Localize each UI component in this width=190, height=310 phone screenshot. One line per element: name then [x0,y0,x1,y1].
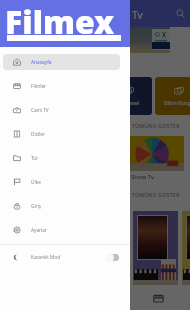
button[interactable]: Karanlık Mod [0,245,130,269]
button[interactable]: Anasayfa [3,54,120,70]
staticText: TÜMÜNÜ GÖSTER [132,191,180,198]
staticText: Belgesel [118,99,140,106]
button[interactable]: Filmler [3,78,120,94]
staticText: Ayarlar [31,227,47,233]
button[interactable]: Tür [3,150,120,166]
staticText: Bilim Kurgu [164,99,190,106]
button[interactable]: Belgesel [105,77,152,115]
button[interactable]: Aksiyon [5,77,52,115]
staticText: Anasayfa [31,59,52,65]
button[interactable]: Canlı TV [3,102,120,118]
staticText: Giriş [31,203,42,209]
staticText: Tv [132,8,143,22]
staticText: Filmex [5,0,115,44]
button[interactable]: Ülke [3,174,120,190]
staticText: Ülke [31,179,41,185]
staticText: Canlı TV [31,107,49,113]
button[interactable]: Diziler [3,126,120,142]
staticText: Filmler [31,83,47,89]
button[interactable]: Bilim Kurgu [155,77,190,115]
button[interactable]: Ayarlar [3,222,120,238]
button[interactable] [182,211,190,285]
staticText: Diziler [31,131,45,137]
button[interactable]: Giriş [3,198,120,214]
button[interactable]: Search [172,5,188,21]
button[interactable] [133,211,178,285]
staticText: TÜMÜNÜ GÖSTER [132,122,180,129]
button[interactable] [100,136,184,171]
button[interactable]: Tab 3 [148,288,168,308]
button[interactable] [84,211,129,285]
staticText: Show Tv [131,173,155,181]
staticText: Tür [31,155,39,161]
staticText: Karanlık Mod [31,254,61,260]
